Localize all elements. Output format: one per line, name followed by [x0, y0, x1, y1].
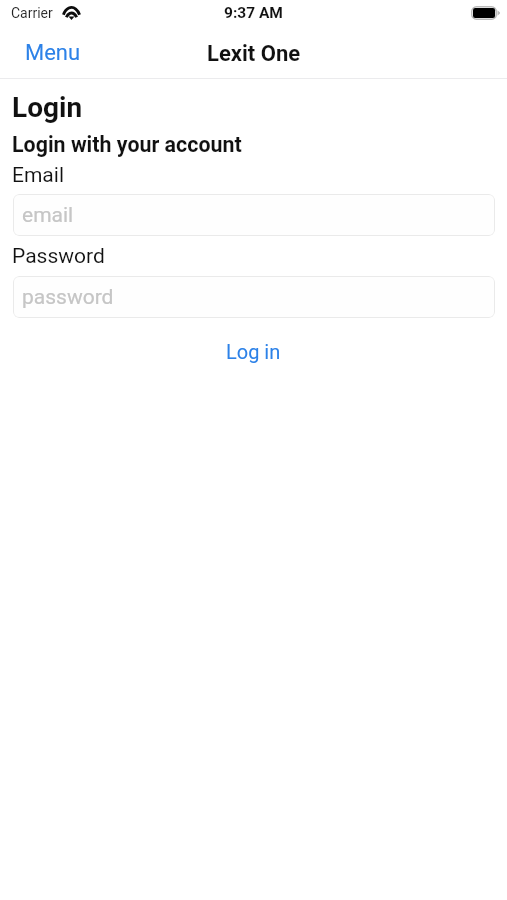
staticText: email [22, 203, 74, 228]
staticText: Menu [25, 40, 81, 66]
button[interactable]: Password input [13, 276, 495, 318]
staticText: password [22, 285, 114, 310]
button[interactable]: Log in [208, 336, 299, 367]
staticText: Password [12, 244, 105, 269]
staticText: Lexit One [207, 41, 301, 67]
staticText: Login [12, 91, 83, 124]
button[interactable]: Menu [0, 34, 99, 79]
staticText: Login with your account [12, 132, 242, 157]
other: Battery full [471, 6, 500, 20]
button[interactable]: Email input [13, 194, 495, 236]
staticText: 9:37 AM [224, 4, 283, 22]
staticText: Log in [226, 340, 281, 363]
other: Wi-Fi signal [62, 6, 81, 20]
staticText: Email [12, 163, 64, 188]
staticText: Carrier [11, 5, 53, 21]
